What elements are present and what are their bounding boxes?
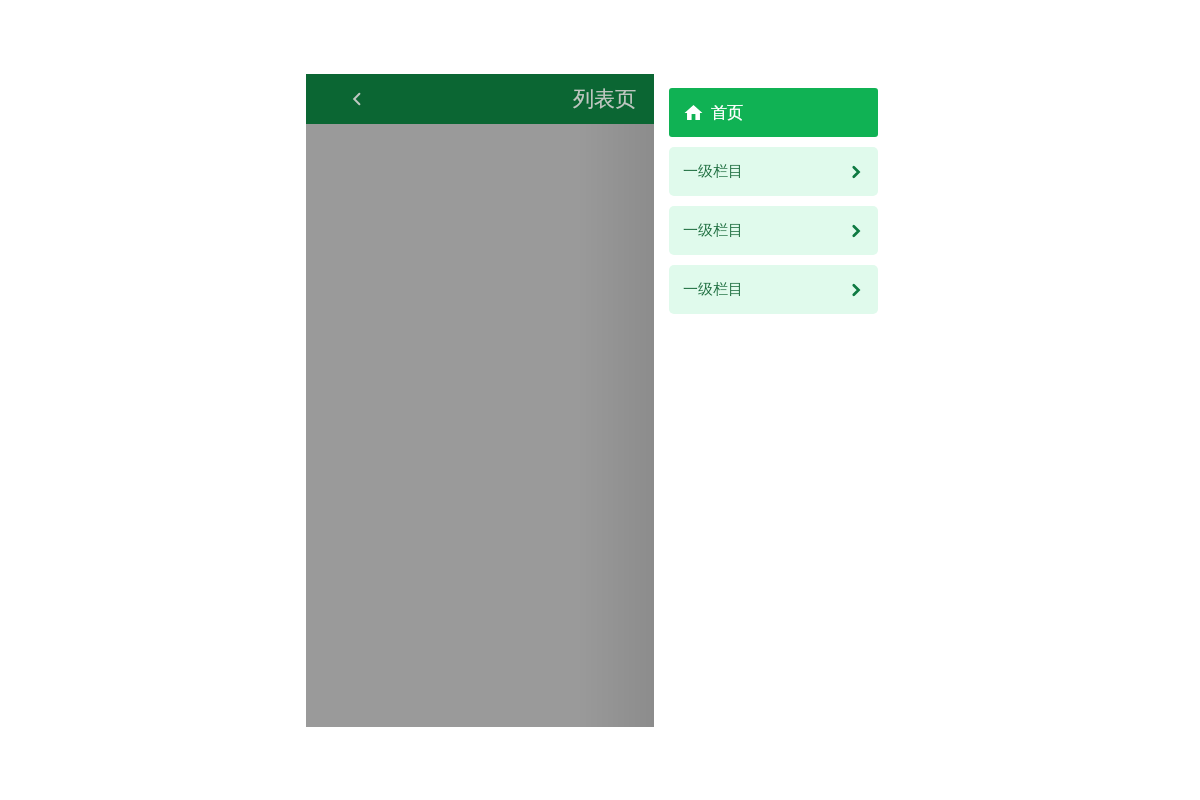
button[interactable]: Back [338, 80, 376, 118]
button[interactable]: 一级栏目 [669, 147, 878, 196]
button[interactable]: 一级栏目 [669, 265, 878, 314]
button[interactable]: 首页 [669, 88, 878, 137]
staticText: 一级栏目 [683, 221, 743, 240]
staticText: 列表页 [573, 86, 636, 112]
staticText: 首页 [711, 103, 743, 123]
staticText: 一级栏目 [683, 162, 743, 181]
button[interactable]: 一级栏目 [669, 206, 878, 255]
staticText: 一级栏目 [683, 280, 743, 299]
